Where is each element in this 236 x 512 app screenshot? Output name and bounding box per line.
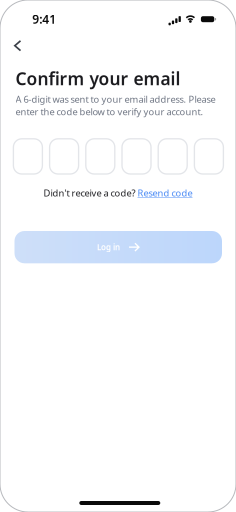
staticText: Didn't receive a code? bbox=[43, 187, 137, 199]
button[interactable]: Log in bbox=[14, 231, 222, 263]
staticText: Resend code bbox=[137, 187, 192, 199]
staticText: A 6-digit was sent to your email address… bbox=[15, 93, 215, 118]
staticText: Log in bbox=[97, 242, 120, 252]
staticText: Confirm your email bbox=[15, 67, 180, 90]
button[interactable]: Resend code bbox=[137, 187, 192, 199]
staticText: 9:41 bbox=[32, 11, 56, 27]
button[interactable]: Back bbox=[5, 35, 35, 56]
